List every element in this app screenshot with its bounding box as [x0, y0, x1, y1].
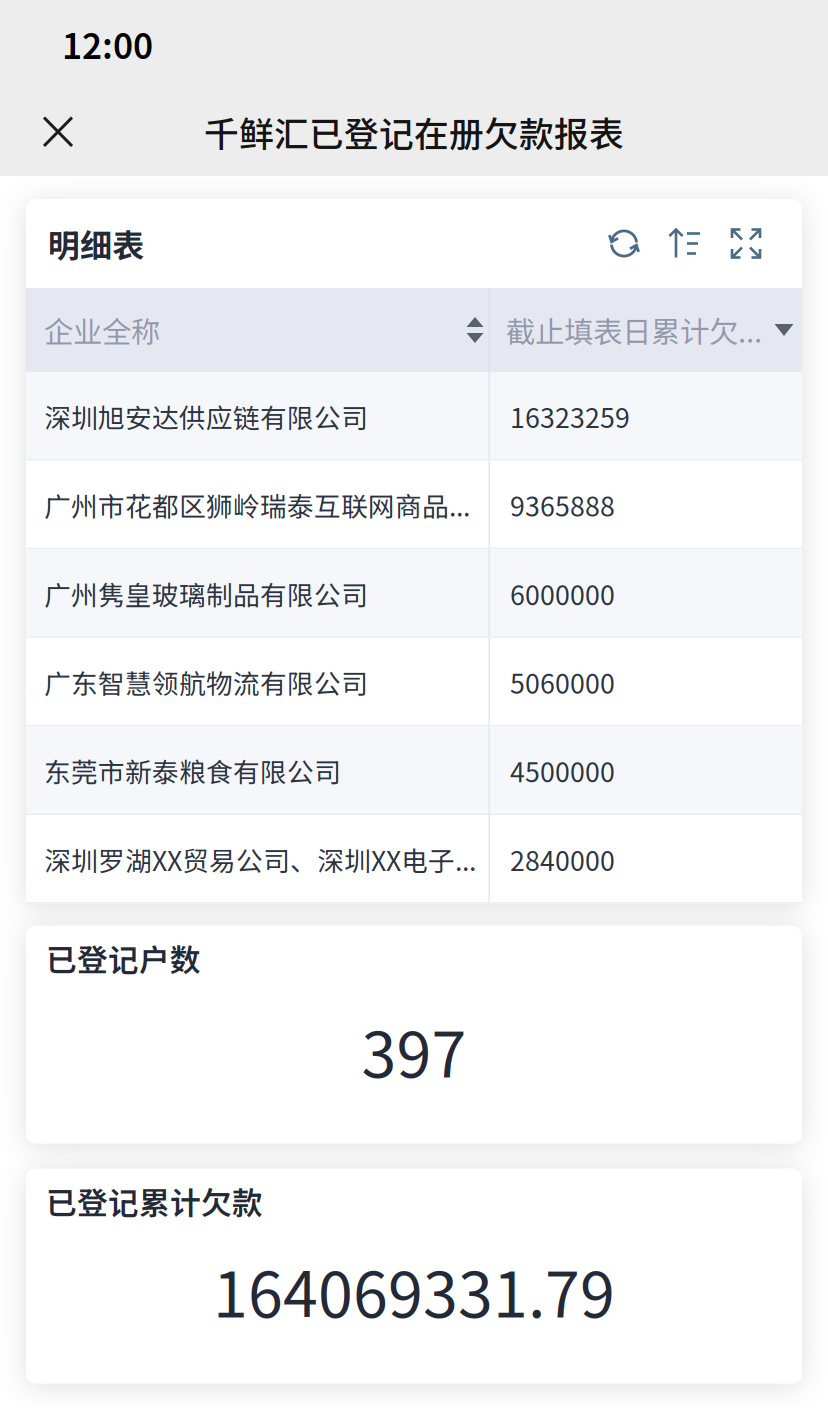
staticText: 明细表 [48, 220, 144, 267]
staticText: 12:00 [62, 19, 153, 69]
button[interactable]: Refresh [600, 219, 648, 267]
staticText: 深圳罗湖XX贸易公司、深圳XX电子... [44, 840, 476, 879]
staticText: 广州隽皇玻璃制品有限公司 [44, 574, 368, 613]
staticText: 已登记户数 [46, 936, 201, 980]
staticText: 广州市花都区狮岭瑞泰互联网商品... [44, 486, 470, 524]
staticText: 已登记累计欠款 [46, 1179, 263, 1223]
staticText: 深圳旭安达供应链有限公司 [44, 397, 368, 436]
staticText: 6000000 [510, 574, 615, 613]
staticText: 截止填表日累计欠... [506, 309, 762, 351]
staticText: 164069331.79 [213, 1245, 615, 1336]
staticText: 千鲜汇已登记在册欠款报表 [204, 107, 624, 157]
staticText: 东莞市新泰粮食有限公司 [44, 751, 341, 790]
staticText: 9365888 [510, 486, 615, 524]
staticText: 2840000 [510, 840, 615, 879]
button[interactable]: Sort [661, 219, 709, 267]
staticText: 5060000 [510, 663, 615, 701]
staticText: 企业全称 [44, 309, 160, 351]
staticText: 16323259 [510, 397, 630, 436]
staticText: 广东智慧领航物流有限公司 [44, 663, 368, 701]
staticText: 397 [361, 1005, 466, 1096]
staticText: 4500000 [510, 751, 615, 790]
button[interactable]: Full screen [722, 219, 770, 267]
button[interactable]: Close [21, 95, 95, 169]
